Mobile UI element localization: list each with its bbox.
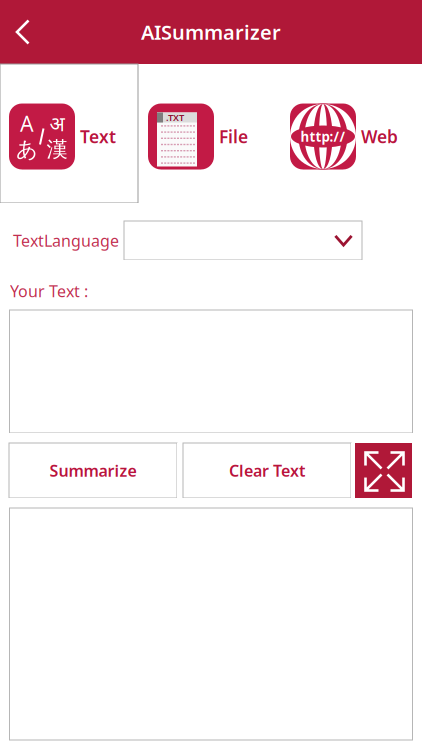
staticText: अ bbox=[49, 110, 64, 137]
staticText: AISummarizer bbox=[141, 19, 281, 45]
staticText: Text bbox=[80, 125, 116, 148]
staticText: Web bbox=[361, 125, 398, 148]
button[interactable]: A bbox=[0, 64, 138, 203]
button[interactable]: Summarize bbox=[9, 443, 177, 498]
staticText: .TXT bbox=[166, 111, 184, 124]
button[interactable]: .TXT bbox=[138, 64, 280, 203]
staticText: A bbox=[20, 109, 34, 138]
staticText: Clear Text bbox=[229, 460, 305, 481]
button[interactable]: http:// bbox=[280, 64, 422, 203]
staticText: 漢 bbox=[46, 136, 67, 163]
button[interactable]: Clear Text bbox=[183, 443, 351, 498]
staticText: Summarize bbox=[49, 460, 136, 481]
button[interactable]: Expand full screen bbox=[355, 443, 412, 498]
staticText: TextLanguage bbox=[13, 230, 119, 251]
staticText: http:// bbox=[300, 128, 345, 145]
button[interactable] bbox=[124, 221, 362, 260]
staticText: Your Text : bbox=[10, 280, 88, 302]
staticText: あ bbox=[16, 136, 38, 163]
button[interactable]: Back bbox=[0, 0, 46, 64]
staticText: File bbox=[219, 125, 248, 148]
